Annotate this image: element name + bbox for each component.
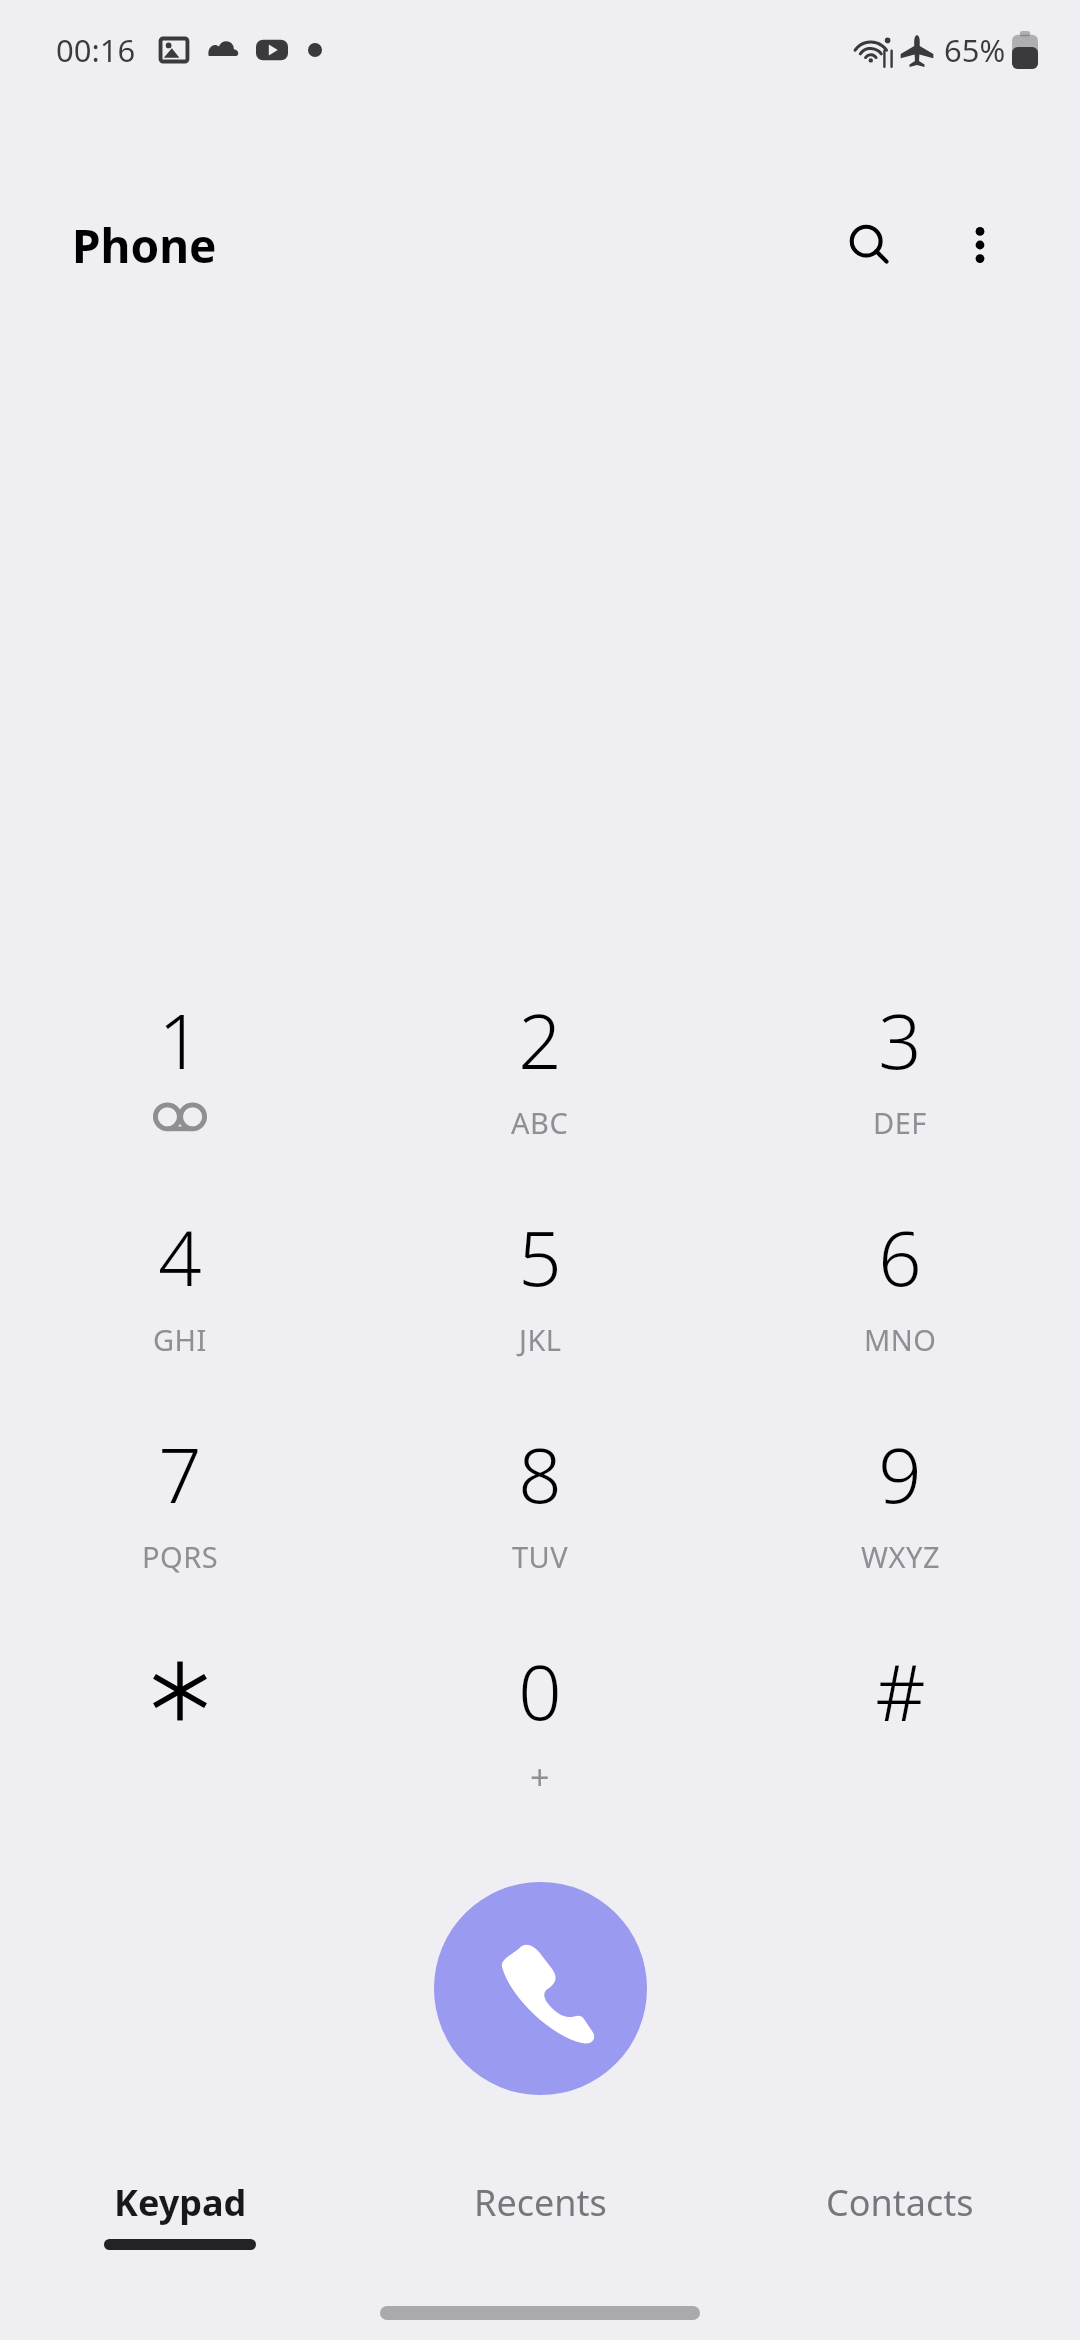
staticText: Phone xyxy=(72,214,217,277)
staticText: 2 xyxy=(518,988,562,1092)
button[interactable]: 9 xyxy=(720,1409,1080,1626)
button[interactable]: 4 xyxy=(0,1192,360,1409)
button[interactable]: More options xyxy=(932,197,1028,293)
staticText: Contacts xyxy=(826,2178,974,2227)
staticText: 3 xyxy=(878,988,922,1092)
button[interactable]: Search xyxy=(822,197,918,293)
staticText: Recents xyxy=(474,2178,607,2227)
staticText: + xyxy=(530,1754,550,1800)
button[interactable] xyxy=(0,1626,360,1843)
staticText: 8 xyxy=(518,1422,562,1526)
staticText: 65% xyxy=(944,29,1006,71)
button[interactable]: 3 xyxy=(720,975,1080,1192)
staticText: 6 xyxy=(878,1205,922,1309)
button[interactable]: 8 xyxy=(360,1409,720,1626)
staticText: # xyxy=(875,1638,926,1744)
button[interactable]: Keypad xyxy=(0,2178,360,2288)
staticText: 5 xyxy=(518,1205,562,1309)
staticText: 00:16 xyxy=(56,29,136,71)
button[interactable]: # xyxy=(720,1626,1080,1843)
button[interactable]: 5 xyxy=(360,1192,720,1409)
staticText: 0 xyxy=(518,1639,562,1743)
staticText: PQRS xyxy=(142,1537,219,1576)
button[interactable]: 7 xyxy=(0,1409,360,1626)
button[interactable]: Contacts xyxy=(720,2178,1080,2288)
button[interactable]: 1 xyxy=(0,975,360,1192)
button[interactable]: Call xyxy=(434,1882,647,2095)
button[interactable]: 0 xyxy=(360,1626,720,1843)
button[interactable]: Recents xyxy=(360,2178,720,2288)
staticText: WXYZ xyxy=(861,1537,940,1576)
staticText: 9 xyxy=(878,1422,922,1526)
staticText: MNO xyxy=(864,1320,937,1359)
staticText: ABC xyxy=(511,1103,569,1142)
staticText: 1 xyxy=(158,988,202,1092)
staticText: 4 xyxy=(158,1205,202,1309)
staticText: TUV xyxy=(512,1537,569,1576)
staticText: DEF xyxy=(873,1103,927,1142)
staticText: Keypad xyxy=(114,2178,247,2227)
button[interactable]: 6 xyxy=(720,1192,1080,1409)
staticText: 7 xyxy=(158,1422,202,1526)
staticText: GHI xyxy=(153,1320,207,1359)
staticText: JKL xyxy=(519,1320,562,1359)
button[interactable]: 2 xyxy=(360,975,720,1192)
